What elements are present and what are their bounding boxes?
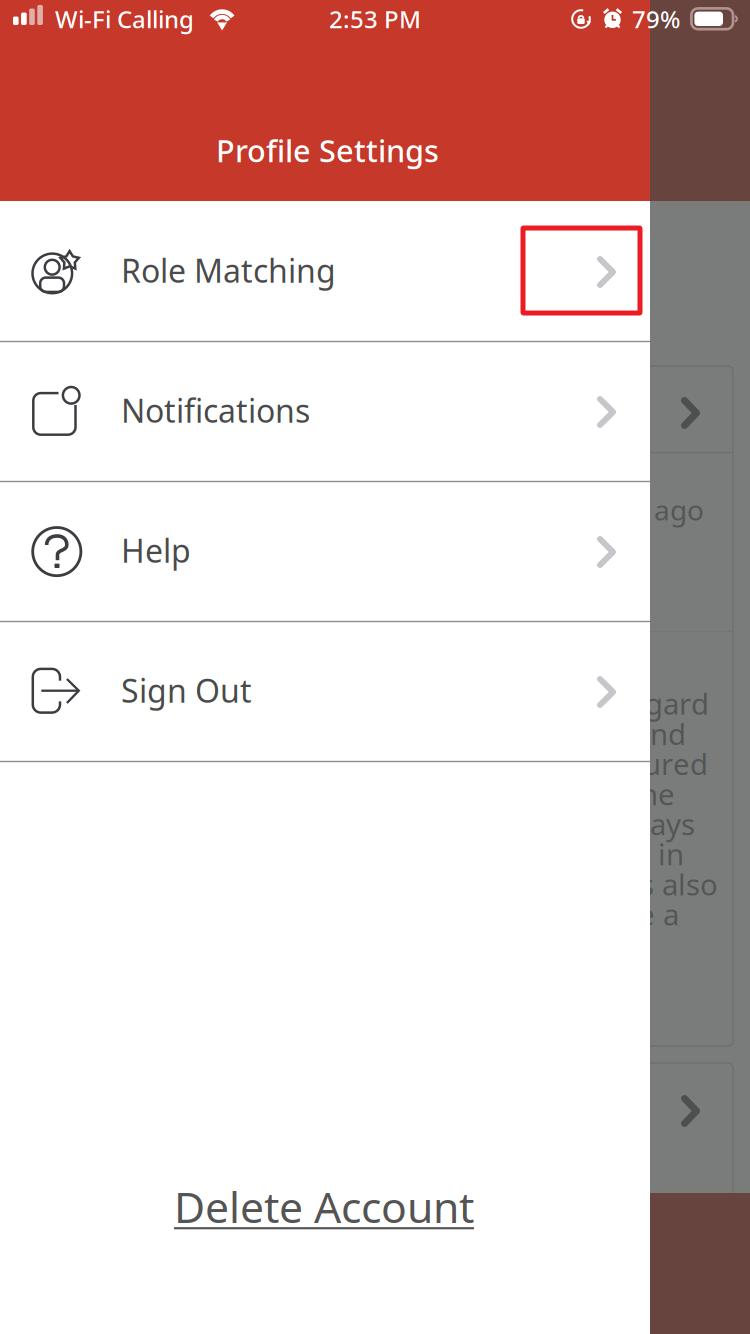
staticText: Delete Account (174, 1178, 474, 1235)
staticText: 79% (632, 3, 680, 35)
staticText: with regard (548, 684, 709, 723)
button[interactable]: Delete Account (156, 1164, 492, 1249)
staticText: members also (522, 865, 718, 904)
staticText: pathways (564, 804, 695, 843)
staticText: receive a (555, 895, 679, 934)
staticText: structured (563, 744, 708, 783)
staticText: Wi-Fi Calling (55, 3, 194, 35)
staticText: in the (595, 774, 675, 813)
staticText: ago (654, 491, 704, 528)
staticText: Sign Out (121, 669, 252, 711)
button[interactable]: Sign Out (0, 621, 650, 761)
staticText: Help (121, 529, 191, 571)
button[interactable]: Notifications (0, 341, 650, 481)
staticText: 2:53 PM (329, 3, 421, 35)
staticText: resulting in (526, 834, 684, 873)
staticText: Profile Settings (216, 130, 439, 171)
button[interactable]: Help (0, 481, 650, 621)
button[interactable]: Role Matching (0, 201, 650, 341)
staticText: safety and (543, 714, 686, 753)
staticText: Role Matching (121, 249, 336, 291)
staticText: Notifications (121, 389, 310, 431)
